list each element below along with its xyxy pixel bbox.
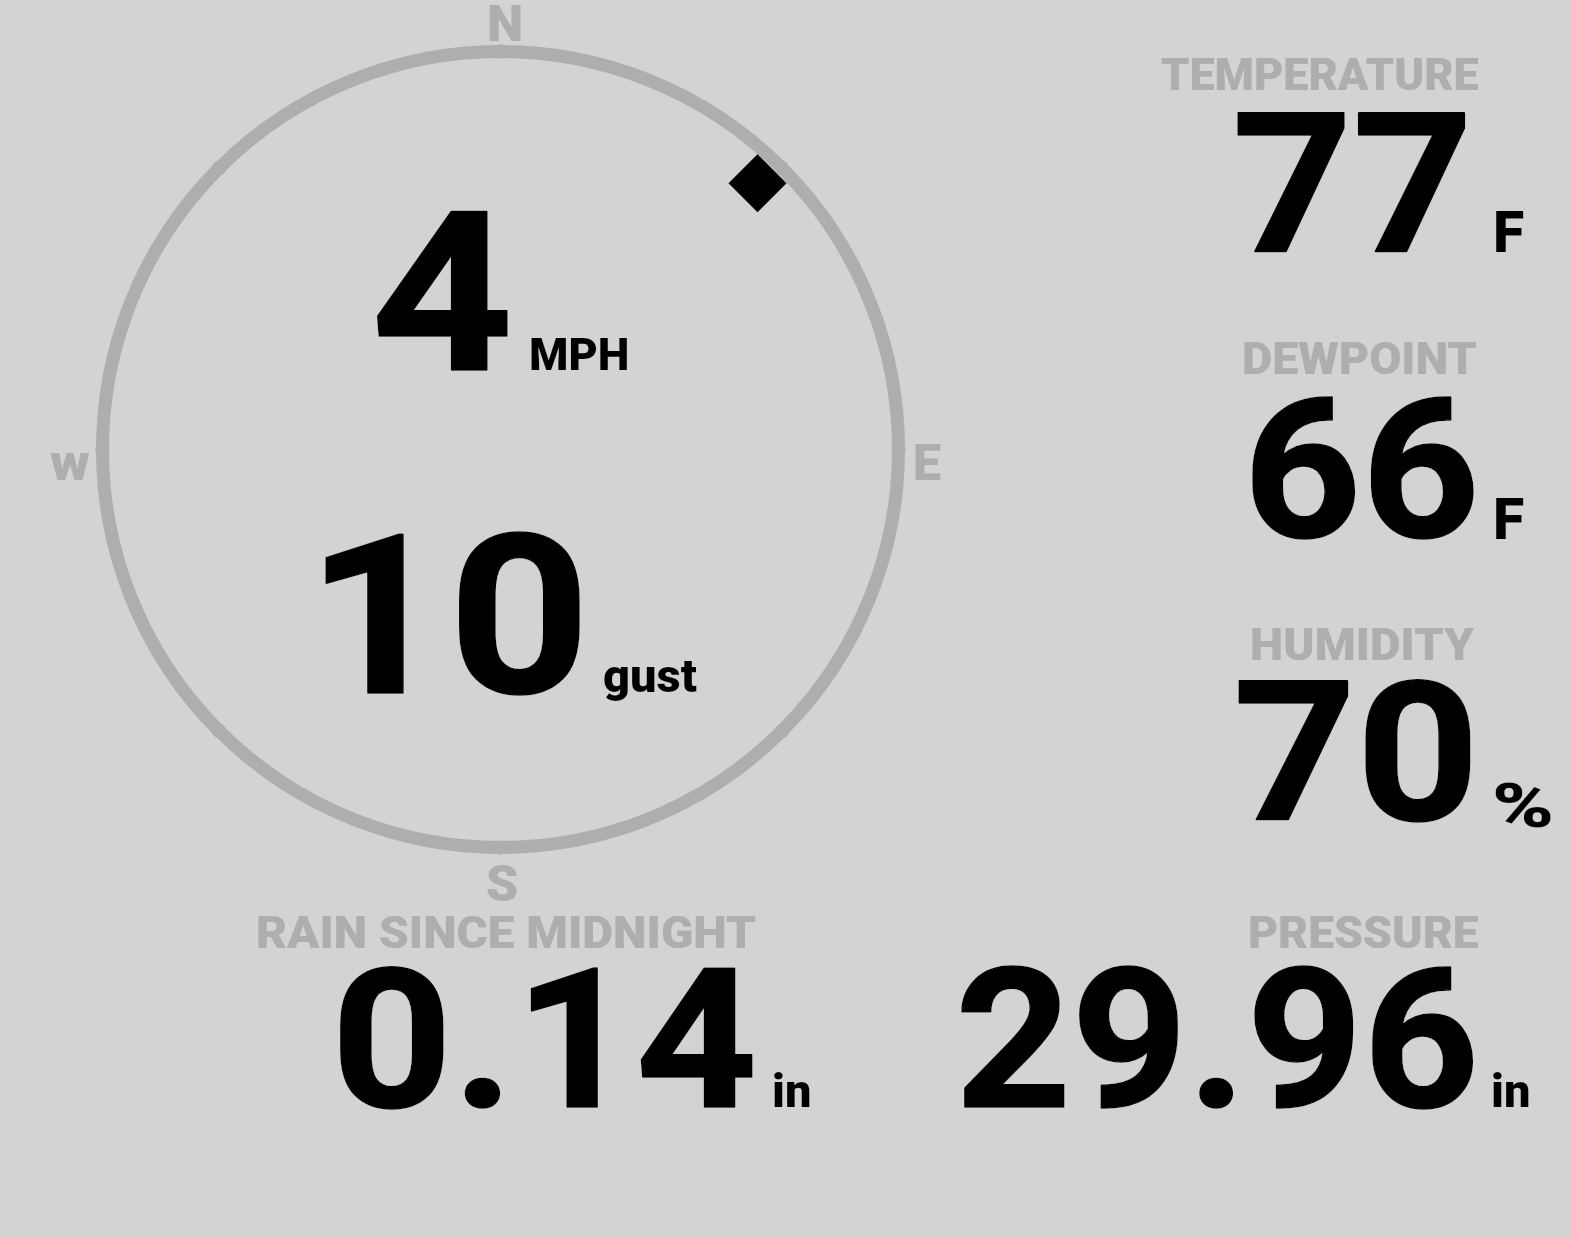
staticText: gust: [603, 648, 697, 703]
button[interactable]: Pressure 29.96 inches: [900, 900, 1571, 1130]
staticText: 29.96: [955, 927, 1480, 1154]
staticText: 10: [306, 487, 591, 747]
staticText: MPH: [529, 328, 630, 381]
button[interactable]: Humidity 70 percent: [1100, 610, 1571, 840]
staticText: S: [486, 855, 519, 914]
button[interactable]: Rain since midnight 0.14 inches: [200, 900, 840, 1130]
staticText: F: [1493, 486, 1525, 553]
staticText: 70: [1233, 640, 1480, 867]
button[interactable]: Dewpoint 66 degrees Fahrenheit: [1100, 324, 1571, 554]
button[interactable]: Temperature 77 degrees Fahrenheit: [1100, 40, 1571, 270]
staticText: 77: [1232, 72, 1473, 299]
staticText: 4: [371, 164, 514, 424]
staticText: in: [1491, 1063, 1531, 1118]
staticText: E: [913, 434, 941, 493]
staticText: N: [487, 0, 524, 54]
staticText: F: [1493, 199, 1525, 266]
staticText: w: [50, 434, 91, 493]
staticText: %: [1492, 769, 1555, 842]
staticText: 10: [306, 487, 591, 747]
staticText: in: [772, 1063, 812, 1118]
staticText: 4: [371, 164, 514, 424]
staticText: 66: [1243, 357, 1480, 584]
staticText: 29.96: [955, 927, 1480, 1154]
staticText: PRESSURE: [1248, 906, 1479, 959]
staticText: HUMIDITY: [1250, 618, 1474, 671]
staticText: 0.14: [331, 927, 758, 1154]
staticText: TEMPERATURE: [1161, 48, 1479, 101]
staticText: DEWPOINT: [1242, 332, 1477, 385]
staticText: 70: [1233, 640, 1480, 867]
button[interactable]: Wind 4 miles per hour, gusting 10, compa…: [95, 45, 906, 856]
staticText: 77: [1232, 72, 1473, 299]
staticText: RAIN SINCE MIDNIGHT: [256, 906, 757, 959]
staticText: 0.14: [331, 927, 758, 1154]
staticText: 66: [1243, 357, 1480, 584]
